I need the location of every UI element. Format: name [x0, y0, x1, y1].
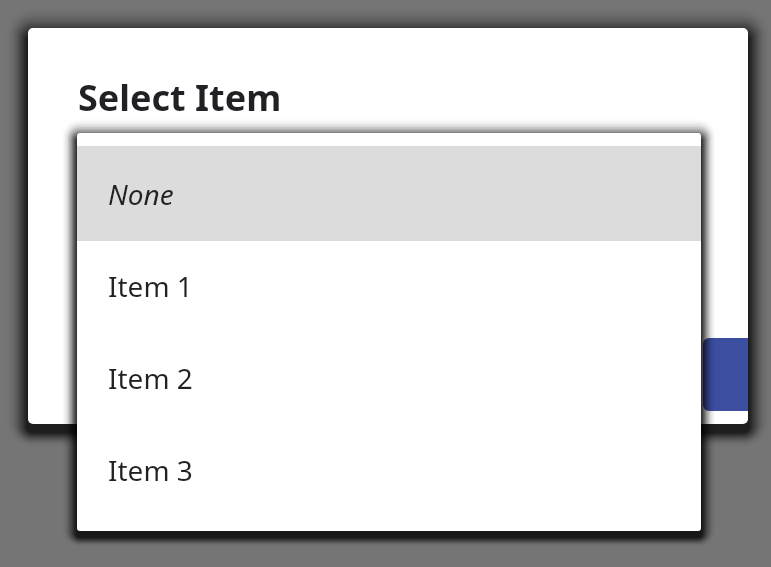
- button[interactable]: Item 1: [77, 241, 701, 333]
- staticText: Select Item: [78, 73, 282, 122]
- staticText: Item 1: [108, 267, 193, 305]
- button[interactable]: Item 2: [77, 333, 701, 425]
- button[interactable]: Item 3: [77, 425, 701, 517]
- staticText: None: [108, 175, 174, 213]
- button[interactable]: None: [77, 146, 701, 241]
- button[interactable]: OK: [703, 338, 748, 411]
- staticText: Item 2: [108, 359, 193, 397]
- staticText: Item 3: [108, 451, 193, 489]
